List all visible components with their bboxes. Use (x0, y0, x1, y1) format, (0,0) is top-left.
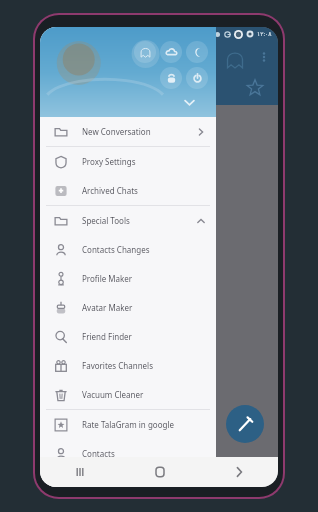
button[interactable]: New message (226, 405, 264, 443)
staticText: Special Tools (82, 215, 196, 226)
staticText: Avatar Maker (82, 302, 206, 313)
staticText: Proxy Settings (82, 156, 206, 167)
button[interactable]: Avatar Maker (40, 293, 216, 322)
button[interactable]: Contacts Changes (40, 235, 216, 264)
button[interactable]: Home (120, 457, 199, 487)
button[interactable]: Lock (160, 67, 182, 89)
button[interactable]: Archived Chats (40, 176, 216, 205)
button[interactable]: Favorites Channels (40, 351, 216, 380)
button[interactable]: Profile Maker (40, 264, 216, 293)
staticText: Contacts (82, 448, 206, 459)
staticText: Rate TalaGram in google (82, 419, 206, 430)
button[interactable]: Back (199, 457, 278, 487)
button[interactable]: Night mode (186, 41, 208, 63)
staticText: ۱۲:۰۸ (257, 30, 272, 38)
button[interactable]: Power (186, 67, 208, 89)
staticText: Archived Chats (82, 185, 206, 196)
button[interactable]: New Conversation (40, 117, 216, 146)
staticText: Vacuum Cleaner (82, 389, 206, 400)
staticText: Profile Maker (82, 273, 206, 284)
button[interactable]: Proxy Settings (40, 147, 216, 176)
staticText: New Conversation (82, 126, 196, 137)
button[interactable]: Special Tools (40, 206, 216, 235)
button[interactable]: Cloud (160, 41, 182, 63)
button[interactable]: Contacts (40, 439, 216, 468)
staticText: Contacts Changes (82, 244, 206, 255)
staticText: Friend Finder (82, 331, 206, 342)
button[interactable]: Expand accounts (180, 93, 198, 111)
button[interactable]: Friend Finder (40, 322, 216, 351)
button[interactable]: Rate TalaGram in google (40, 410, 216, 439)
staticText: Favorites Channels (82, 360, 206, 371)
button[interactable]: Ghost mode (134, 41, 156, 63)
button[interactable]: Recents (40, 457, 120, 487)
button[interactable]: Vacuum Cleaner (40, 380, 216, 409)
